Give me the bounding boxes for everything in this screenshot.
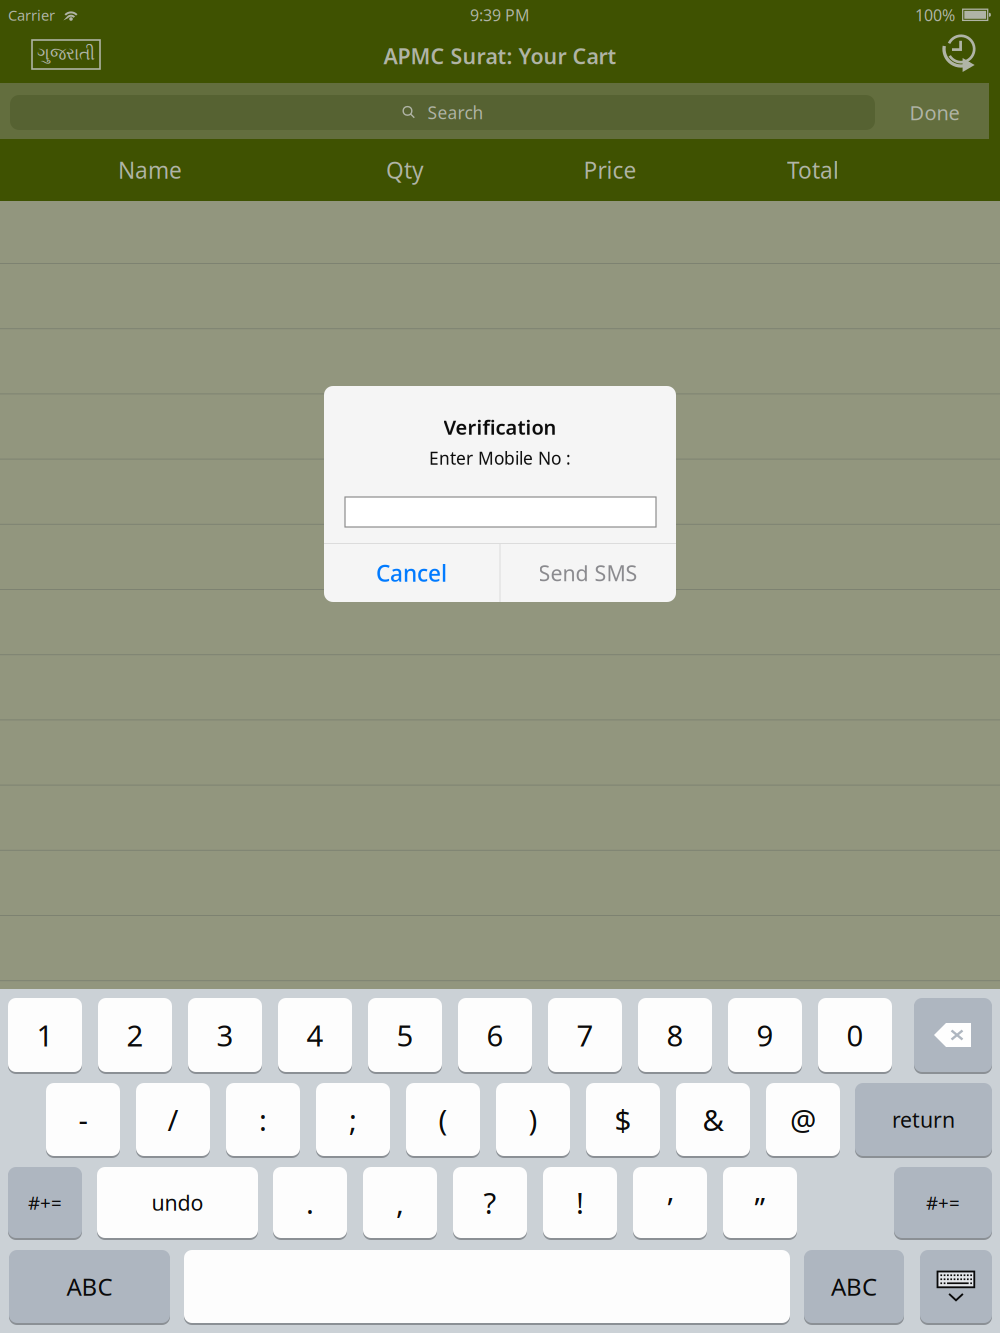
button[interactable]: #+=: [8, 1166, 82, 1239]
staticText: Verification: [443, 414, 556, 440]
staticText: APMC Surat: Your Cart: [383, 42, 616, 70]
staticText: ?: [483, 1183, 496, 1222]
staticText: ’: [667, 1188, 672, 1227]
button[interactable]: .: [273, 1166, 347, 1239]
staticText: 4: [306, 1015, 323, 1054]
staticText: ”: [754, 1188, 765, 1227]
button[interactable]: -: [46, 1082, 120, 1157]
button[interactable]: (: [406, 1082, 480, 1157]
staticText: !: [576, 1183, 584, 1222]
button[interactable]: $: [586, 1082, 660, 1157]
staticText: Search: [427, 101, 483, 124]
staticText: 7: [576, 1015, 593, 1054]
staticText: (: [438, 1100, 447, 1139]
staticText: #+=: [926, 1190, 960, 1215]
button[interactable]: 2: [98, 997, 172, 1073]
button[interactable]: Done: [880, 94, 989, 131]
button[interactable]: undo: [97, 1166, 258, 1239]
staticText: ABC: [66, 1271, 112, 1302]
button[interactable]: !: [543, 1166, 617, 1239]
button[interactable]: :: [226, 1082, 300, 1157]
staticText: ;: [349, 1100, 357, 1139]
staticText: &: [702, 1100, 723, 1139]
button[interactable]: /: [136, 1082, 210, 1157]
staticText: ,: [396, 1183, 404, 1222]
staticText: @: [790, 1100, 816, 1139]
staticText: Enter Mobile No :: [429, 446, 571, 469]
staticText: 5: [396, 1015, 413, 1054]
button[interactable]: space: [184, 1249, 790, 1324]
staticText: 9:39 PM: [470, 4, 530, 26]
staticText: 8: [666, 1015, 683, 1054]
staticText: ): [528, 1100, 537, 1139]
staticText: .: [306, 1183, 314, 1222]
staticText: ABC: [831, 1271, 877, 1302]
button[interactable]: ’: [633, 1166, 707, 1239]
button[interactable]: 5: [368, 997, 442, 1073]
staticText: /: [167, 1100, 178, 1139]
staticText: 6: [486, 1015, 503, 1054]
button[interactable]: 3: [188, 997, 262, 1073]
staticText: ગુજરાતી: [37, 46, 95, 63]
staticText: Carrier: [8, 5, 55, 25]
staticText: Total: [787, 155, 839, 185]
staticText: $: [614, 1100, 631, 1139]
button[interactable]: ABC: [804, 1249, 904, 1324]
staticText: Name: [118, 155, 182, 185]
staticText: 0: [846, 1015, 863, 1054]
button[interactable]: @: [766, 1082, 840, 1157]
button[interactable]: 0: [818, 997, 892, 1073]
staticText: 1: [36, 1015, 53, 1054]
button[interactable]: ”: [723, 1166, 797, 1239]
button[interactable]: ABC: [9, 1249, 170, 1324]
button[interactable]: Delete: [914, 997, 992, 1073]
staticText: undo: [151, 1188, 203, 1217]
button[interactable]: 7: [548, 997, 622, 1073]
button[interactable]: ગુજરાતી: [32, 40, 100, 69]
button[interactable]: ,: [363, 1166, 437, 1239]
button[interactable]: Hide keyboard: [920, 1249, 992, 1324]
staticText: Cancel: [376, 558, 447, 588]
staticText: Qty: [386, 155, 424, 185]
button[interactable]: return: [855, 1082, 992, 1157]
button[interactable]: #+=: [894, 1166, 992, 1239]
staticText: :: [259, 1100, 267, 1139]
button[interactable]: &: [676, 1082, 750, 1157]
button[interactable]: ?: [453, 1166, 527, 1239]
button[interactable]: ): [496, 1082, 570, 1157]
staticText: #+=: [28, 1190, 62, 1215]
staticText: 2: [126, 1015, 143, 1054]
button[interactable]: 1: [8, 997, 82, 1073]
staticText: return: [892, 1105, 955, 1134]
staticText: -: [78, 1100, 87, 1139]
button[interactable]: Send SMS: [500, 544, 676, 602]
staticText: Done: [909, 99, 959, 126]
button[interactable]: 4: [278, 997, 352, 1073]
button[interactable]: 8: [638, 997, 712, 1073]
staticText: Send SMS: [538, 559, 637, 587]
staticText: 3: [216, 1015, 233, 1054]
button[interactable]: 6: [458, 997, 532, 1073]
staticText: 100%: [915, 4, 955, 26]
button[interactable]: 9: [728, 997, 802, 1073]
button[interactable]: Search: [10, 95, 875, 130]
staticText: Price: [583, 155, 636, 185]
staticText: 9: [756, 1015, 773, 1054]
button[interactable]: ;: [316, 1082, 390, 1157]
button[interactable]: Order history: [937, 31, 983, 79]
button[interactable]: Cancel: [324, 544, 499, 602]
